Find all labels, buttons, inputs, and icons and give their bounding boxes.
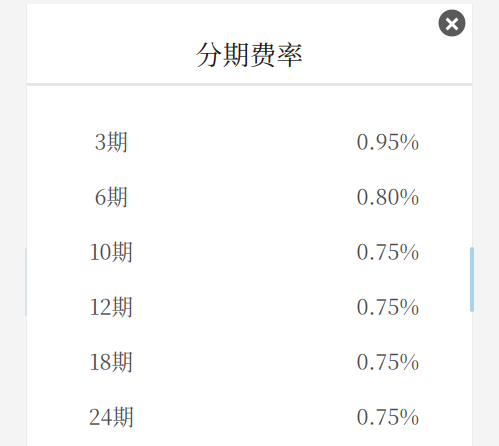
staticText: 10期: [89, 235, 132, 266]
staticText: 3期: [94, 125, 127, 156]
button[interactable]: 6期: [27, 168, 472, 223]
button[interactable]: 18期: [27, 333, 472, 388]
staticText: 24期: [88, 400, 133, 431]
staticText: 0.80%: [356, 180, 419, 211]
staticText: 18期: [89, 345, 132, 376]
staticText: 0.75%: [356, 400, 419, 431]
staticText: 0.95%: [356, 125, 419, 156]
staticText: 0.75%: [356, 290, 419, 321]
staticText: 0.75%: [356, 235, 419, 266]
button[interactable]: 3期: [27, 113, 472, 168]
staticText: 6期: [94, 180, 127, 211]
staticText: 分期费率: [195, 34, 303, 72]
button[interactable]: 10期: [27, 223, 472, 278]
staticText: 12期: [89, 290, 132, 321]
staticText: 0.75%: [356, 345, 419, 376]
button[interactable]: 24期: [27, 388, 472, 443]
button[interactable]: Close: [432, 4, 472, 42]
button[interactable]: 12期: [27, 278, 472, 333]
